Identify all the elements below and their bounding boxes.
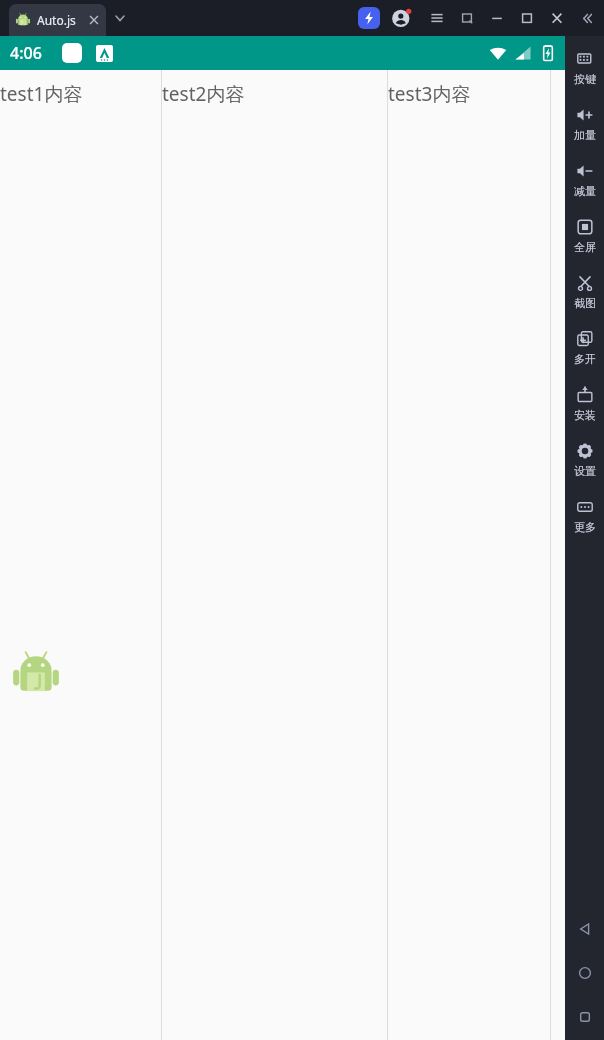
button[interactable]: Close tab: [87, 13, 101, 27]
staticText: 4:06: [10, 42, 42, 64]
button[interactable]: test1内容: [0, 70, 161, 1040]
staticText: 多开: [574, 352, 596, 366]
button[interactable]: test2内容: [162, 70, 387, 1040]
button[interactable]: Boost: [358, 7, 380, 29]
button[interactable]: Account: [390, 6, 414, 30]
staticText: 减量: [574, 184, 596, 198]
button[interactable]: 全屏: [565, 212, 604, 268]
button[interactable]: 减量: [565, 156, 604, 212]
staticText: 设置: [574, 464, 596, 478]
button[interactable]: 按键: [565, 44, 604, 100]
staticText: 按键: [574, 72, 596, 86]
button[interactable]: Minimize: [482, 3, 512, 33]
button[interactable]: 多开: [565, 324, 604, 380]
button[interactable]: Restore down: [452, 3, 482, 33]
button[interactable]: Auto.js: [9, 4, 106, 36]
staticText: 截图: [574, 296, 596, 310]
staticText: 加量: [574, 128, 596, 142]
staticText: test1内容: [0, 81, 83, 107]
button[interactable]: Collapse: [572, 3, 602, 33]
staticText: 安装: [574, 408, 596, 422]
staticText: test2内容: [162, 81, 245, 107]
button[interactable]: 安装: [565, 380, 604, 436]
button[interactable]: 设置: [565, 436, 604, 492]
button[interactable]: Tab list: [110, 8, 130, 28]
staticText: 更多: [574, 520, 596, 534]
button[interactable]: Recents: [572, 1004, 598, 1030]
button[interactable]: 更多: [565, 492, 604, 548]
button[interactable]: Maximize: [512, 3, 542, 33]
button[interactable]: 加量: [565, 100, 604, 156]
button[interactable]: Back: [572, 916, 598, 942]
button[interactable]: Home: [572, 960, 598, 986]
staticText: Auto.js: [37, 12, 76, 28]
button[interactable]: Close: [542, 3, 572, 33]
staticText: 全屏: [574, 240, 596, 254]
button[interactable]: 截图: [565, 268, 604, 324]
button[interactable]: test3内容: [388, 70, 550, 1040]
button[interactable]: Menu: [422, 3, 452, 33]
staticText: test3内容: [388, 81, 471, 107]
